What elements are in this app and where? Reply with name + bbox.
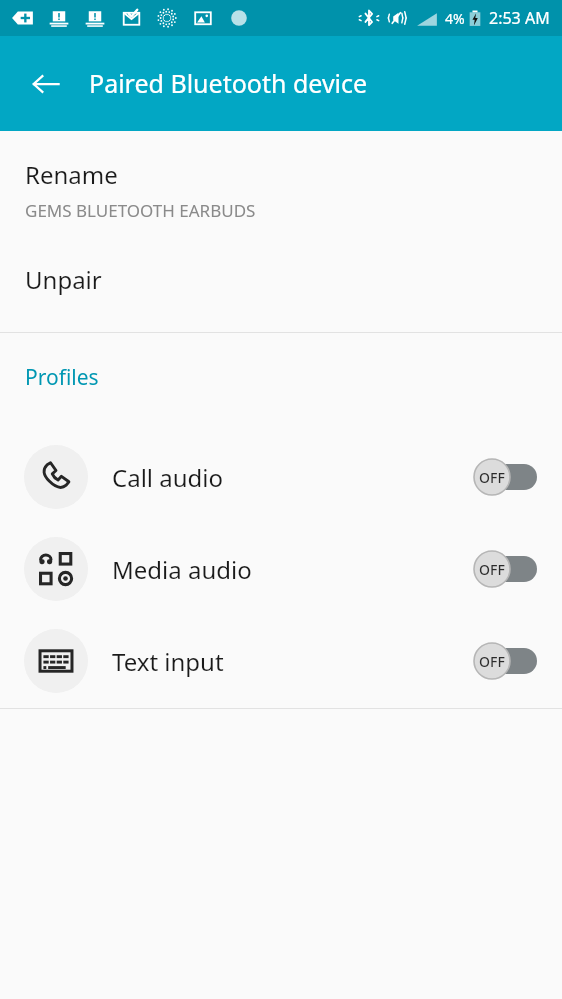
- staticText: Call audio: [112, 461, 224, 494]
- button[interactable]: Rename: [0, 152, 562, 230]
- staticText: 4%: [445, 9, 465, 28]
- staticText: Profiles: [25, 363, 99, 392]
- staticText: 2:53 AM: [489, 7, 550, 29]
- staticText: GEMS BLUETOOTH EARBUDS: [25, 199, 256, 222]
- button[interactable]: Back: [14, 52, 78, 116]
- button[interactable]: Toggle off: [472, 549, 538, 589]
- button[interactable]: Text input: [0, 615, 562, 707]
- staticText: Media audio: [112, 553, 252, 586]
- staticText: OFF: [479, 560, 505, 579]
- staticText: OFF: [479, 468, 505, 487]
- button[interactable]: Unpair: [0, 257, 562, 304]
- staticText: Unpair: [25, 263, 102, 296]
- button[interactable]: Toggle off: [472, 457, 538, 497]
- staticText: Text input: [112, 645, 224, 678]
- staticText: Rename: [25, 158, 118, 191]
- button[interactable]: Toggle off: [472, 641, 538, 681]
- button[interactable]: Call audio: [0, 431, 562, 523]
- button[interactable]: Media audio: [0, 523, 562, 615]
- staticText: Paired Bluetooth device: [89, 66, 368, 100]
- staticText: OFF: [479, 652, 505, 671]
